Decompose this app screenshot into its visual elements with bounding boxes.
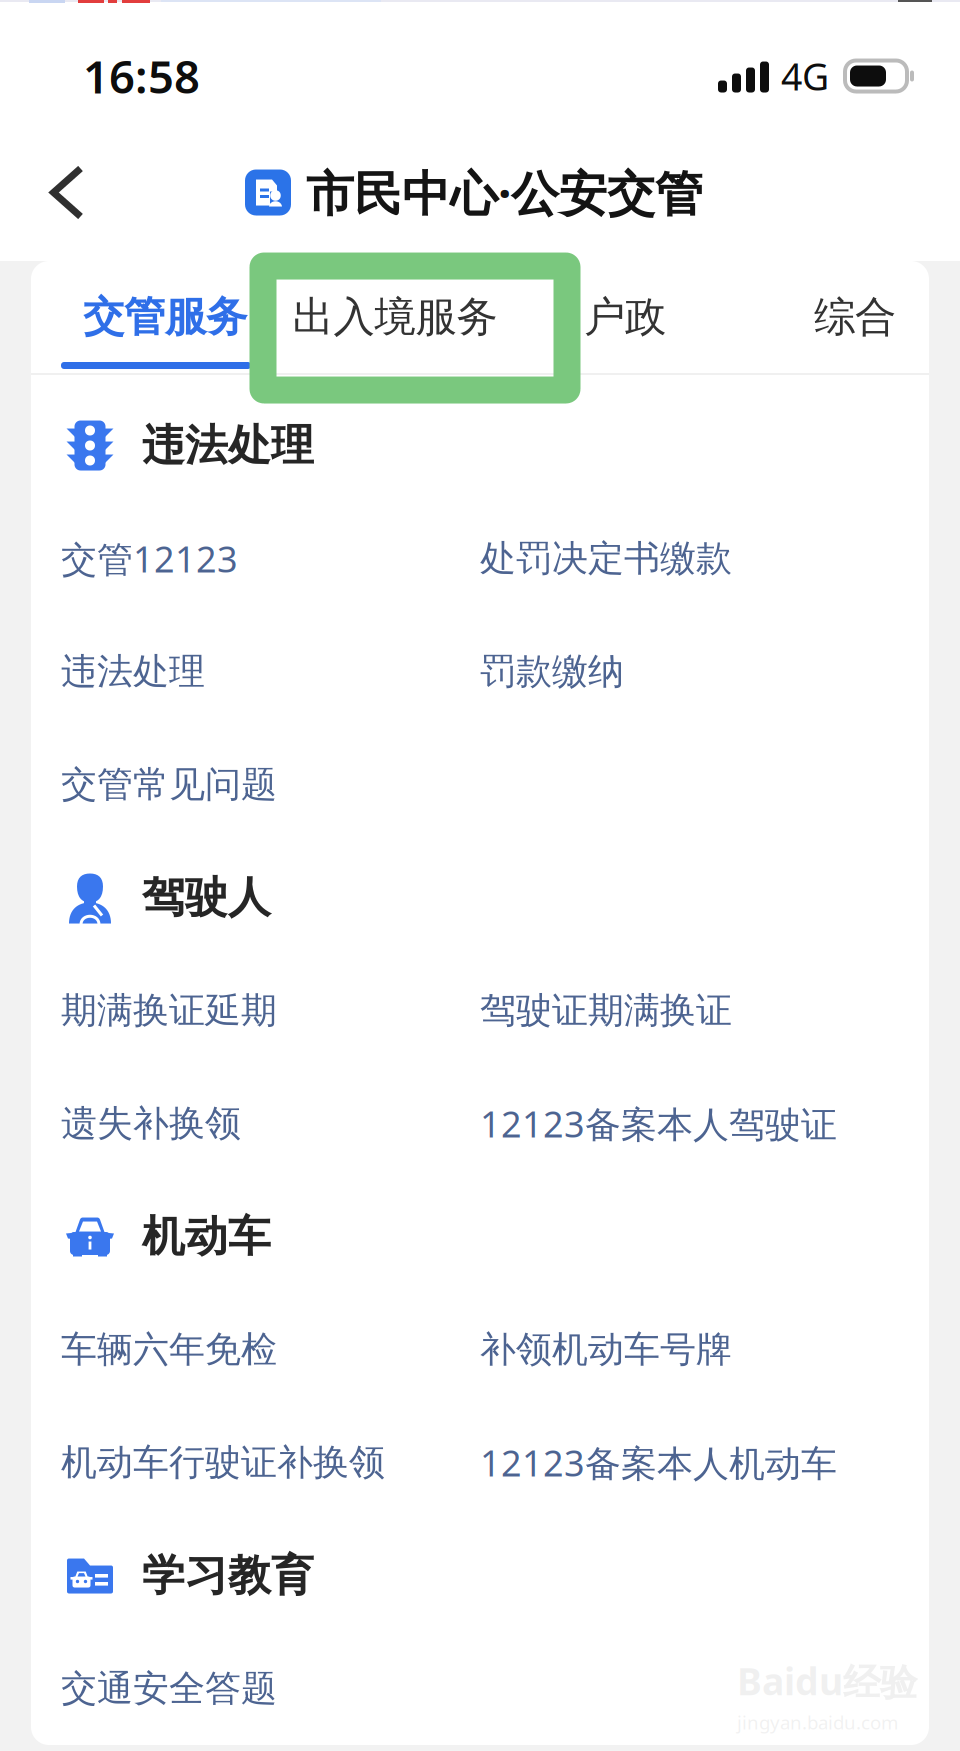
button[interactable]: 车辆六年免检 xyxy=(31,1293,450,1406)
button[interactable]: 交管12123 xyxy=(31,502,450,615)
staticText: 综合 xyxy=(814,292,896,342)
staticText: 市民中心·公安交管 xyxy=(306,161,703,224)
button[interactable]: 违法处理 xyxy=(31,615,450,728)
button[interactable]: 12123备案本人驾驶证 xyxy=(450,1067,869,1180)
staticText: 车辆六年免检 xyxy=(61,1327,277,1372)
staticText: 违法处理 xyxy=(61,649,205,694)
staticText: 学习教育 xyxy=(142,1549,314,1602)
button[interactable]: 期满换证延期 xyxy=(31,954,450,1067)
button[interactable]: 补领机动车号牌 xyxy=(450,1293,869,1406)
staticText: 补领机动车号牌 xyxy=(480,1327,732,1372)
staticText: 交通安全答题 xyxy=(61,1666,277,1711)
button[interactable]: 罚款缴纳 xyxy=(450,615,869,728)
staticText: Baidu经验 xyxy=(737,1656,917,1706)
staticText: 机动车 xyxy=(142,1210,271,1263)
staticText: 罚款缴纳 xyxy=(480,649,624,694)
staticText: 出入境服务 xyxy=(292,292,497,342)
button[interactable]: 返回 xyxy=(0,145,134,240)
staticText: 驾驶人 xyxy=(142,871,271,924)
button[interactable]: 交管服务 xyxy=(50,261,280,373)
button[interactable]: 交管常见问题 xyxy=(31,728,450,841)
button[interactable]: 处罚决定书缴款 xyxy=(450,502,869,615)
staticText: 处罚决定书缴款 xyxy=(480,536,732,581)
button[interactable]: 交通安全答题 xyxy=(31,1632,450,1745)
staticText: 12123备案本人驾驶证 xyxy=(480,1100,837,1147)
staticText: 户政 xyxy=(584,292,666,342)
button[interactable]: 机动车行驶证补换领 xyxy=(31,1406,450,1519)
staticText: 12123备案本人机动车 xyxy=(480,1439,837,1486)
staticText: 交管12123 xyxy=(61,535,238,582)
staticText: 交管服务 xyxy=(83,292,247,342)
staticText: 驾驶证期满换证 xyxy=(480,988,732,1033)
staticText: 期满换证延期 xyxy=(61,988,277,1033)
button[interactable]: 遗失补换领 xyxy=(31,1067,450,1180)
button[interactable]: 出入境服务 xyxy=(280,261,510,373)
staticText: 16:58 xyxy=(83,46,200,106)
staticText: 机动车行驶证补换领 xyxy=(61,1440,385,1485)
staticText: 违法处理 xyxy=(142,419,314,472)
button[interactable]: 驾驶证期满换证 xyxy=(450,954,869,1067)
staticText: 交管常见问题 xyxy=(61,762,277,807)
button[interactable]: 综合 xyxy=(740,261,960,373)
button[interactable]: 户政 xyxy=(510,261,740,373)
staticText: 4G xyxy=(781,51,829,101)
staticText: 遗失补换领 xyxy=(61,1101,241,1146)
button[interactable]: 12123备案本人机动车 xyxy=(450,1406,869,1519)
staticText: jingyan.baidu.com xyxy=(737,1710,898,1735)
